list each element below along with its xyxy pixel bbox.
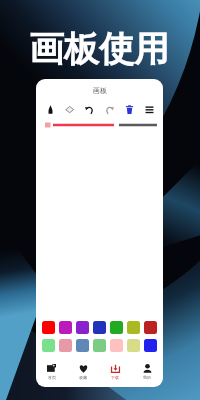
button[interactable]: 首页 bbox=[36, 356, 67, 387]
button[interactable]: Colour swatch bbox=[110, 321, 123, 334]
button[interactable]: Colour swatch bbox=[127, 339, 140, 352]
button[interactable]: Colour swatch bbox=[127, 321, 140, 334]
button[interactable]: Colour swatch bbox=[144, 339, 157, 352]
staticText: 首页 bbox=[48, 375, 56, 380]
staticText: 下载 bbox=[111, 375, 119, 380]
staticText: 我的 bbox=[143, 375, 151, 380]
button[interactable]: Colour swatch bbox=[144, 321, 157, 334]
button[interactable]: Colour swatch bbox=[42, 339, 55, 352]
button[interactable]: Colour swatch bbox=[59, 321, 72, 334]
button[interactable]: 收藏 bbox=[67, 356, 99, 387]
staticText: 画板使用 bbox=[29, 27, 169, 71]
button[interactable]: Colour swatch bbox=[59, 339, 72, 352]
button[interactable]: Colour swatch bbox=[93, 321, 106, 334]
button[interactable]: Redo bbox=[99, 101, 119, 118]
button[interactable]: Pen bbox=[41, 101, 60, 118]
button[interactable]: Eraser bbox=[60, 101, 79, 118]
button[interactable]: Colour swatch bbox=[110, 339, 123, 352]
button[interactable]: 下载 bbox=[99, 356, 131, 387]
button[interactable]: Colour swatch bbox=[76, 339, 89, 352]
staticText: 画板 bbox=[93, 86, 107, 95]
staticText: 收藏 bbox=[79, 375, 87, 380]
button[interactable]: 我的 bbox=[131, 356, 163, 387]
button[interactable]: Undo bbox=[79, 101, 99, 118]
button[interactable]: Colour swatch bbox=[93, 339, 106, 352]
button[interactable]: Menu bbox=[139, 101, 159, 118]
button[interactable]: Colour swatch bbox=[42, 321, 55, 334]
button[interactable]: Delete bbox=[119, 101, 139, 118]
button[interactable]: Colour swatch bbox=[76, 321, 89, 334]
